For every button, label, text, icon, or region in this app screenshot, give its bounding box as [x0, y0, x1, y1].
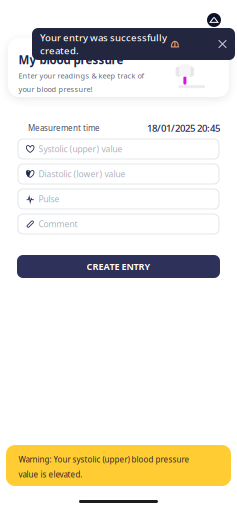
staticText: Your entry was successfully created. — [40, 31, 167, 57]
staticText: Diastolic (lower) value — [38, 168, 125, 180]
button[interactable]: Diastolic (lower) value — [18, 164, 219, 184]
staticText: Enter your readings & keep track of — [18, 71, 144, 81]
staticText: My blood pressure — [18, 52, 123, 68]
button[interactable]: CREATE ENTRY — [17, 255, 220, 278]
staticText: your blood pressure! — [18, 84, 92, 94]
staticText: value is elevated. — [18, 469, 82, 480]
staticText: Comment — [38, 218, 77, 230]
staticText: 18/01/2025 20:45 — [147, 121, 220, 135]
button[interactable]: Systolic (upper) value — [18, 139, 219, 159]
staticText: Measurement time — [28, 123, 100, 133]
staticText: CREATE ENTRY — [86, 260, 150, 273]
staticText: Warning: Your systolic (upper) blood pre… — [18, 454, 189, 465]
button[interactable]: Profile — [204, 10, 224, 30]
button[interactable]: Pulse — [18, 189, 219, 209]
staticText: Pulse — [38, 193, 59, 205]
button[interactable]: Dismiss — [215, 36, 230, 51]
staticText: Systolic (upper) value — [38, 143, 122, 155]
button[interactable]: Comment — [18, 214, 219, 234]
